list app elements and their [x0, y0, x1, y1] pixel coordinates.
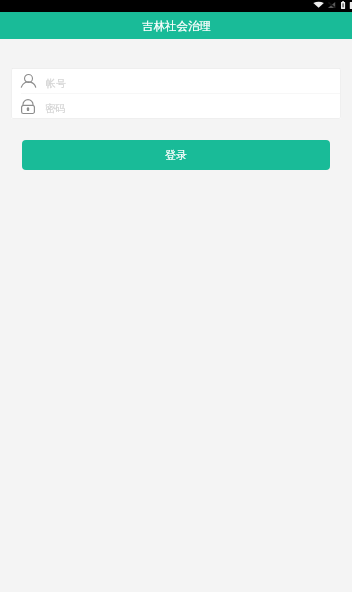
staticText: 登录 — [165, 148, 187, 162]
button[interactable]: Password — [11, 94, 341, 119]
staticText: 帐号 — [46, 77, 66, 90]
button[interactable]: Account — [11, 69, 341, 93]
button[interactable]: 登录 — [22, 140, 330, 170]
staticText: 密码 — [45, 102, 65, 115]
staticText: 吉林社会治理 — [142, 19, 211, 33]
